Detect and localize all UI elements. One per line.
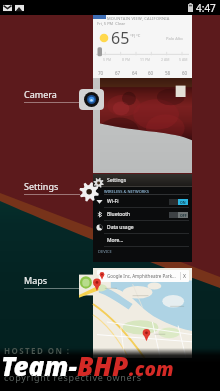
staticText: 5 AM — [179, 57, 188, 62]
staticText: .com — [129, 356, 174, 382]
button[interactable]: Settings — [93, 174, 192, 262]
staticText: Settings — [107, 177, 127, 184]
staticText: More... — [107, 237, 124, 244]
staticText: DEVICE — [98, 249, 112, 254]
staticText: HOSTED ON : — [4, 345, 71, 356]
staticText: copyright respective owners — [4, 371, 142, 383]
button[interactable]: Google Inc, Amphitheatre Park... — [97, 270, 189, 282]
staticText: Wi-Fi — [107, 198, 119, 205]
staticText: 5 PM — [103, 57, 112, 62]
staticText: Maps — [24, 274, 48, 286]
button[interactable]: More... — [93, 234, 192, 247]
staticText: 11 PM — [140, 57, 151, 62]
button[interactable]: Maps — [79, 272, 102, 298]
button[interactable]: Data usage — [93, 221, 192, 234]
staticText: Team- — [1, 348, 77, 383]
button[interactable]: Settings — [24, 180, 80, 195]
staticText: BHP — [77, 348, 129, 383]
button[interactable]: Wi-Fi — [93, 195, 192, 208]
staticText: MOUNTAIN VIEW, CALIFORNIA — [107, 16, 170, 21]
button[interactable]: Camera — [24, 88, 80, 103]
staticText: 65 — [111, 27, 130, 49]
staticText: Fri, 5 PM Clear — [97, 21, 126, 26]
staticText: Google Inc, Amphitheatre Park... — [107, 273, 176, 279]
button[interactable] — [93, 78, 192, 173]
staticText: Camera — [24, 88, 57, 100]
button[interactable]: Settings — [77, 177, 104, 204]
staticText: ON — [180, 200, 186, 205]
staticText: Bluetooth — [107, 211, 131, 218]
staticText: 60 — [182, 70, 188, 76]
staticText: Settings — [24, 180, 59, 192]
staticText: 67 — [115, 70, 121, 76]
staticText: 4:47 — [196, 1, 216, 15]
staticText: Palo Alto — [166, 36, 183, 41]
staticText: OFF — [180, 213, 187, 218]
button[interactable]: Maps — [24, 274, 80, 289]
staticText: WIRELESS & NETWORKS — [104, 189, 149, 194]
staticText: Data usage — [107, 224, 134, 231]
staticText: 8 PM — [122, 57, 131, 62]
staticText: 70 — [98, 70, 104, 76]
button[interactable]: Google Inc, Amphitheatre Park... — [93, 268, 192, 358]
staticText: X — [183, 273, 186, 280]
staticText: 64 — [132, 70, 138, 76]
staticText: 2 AM — [161, 57, 170, 62]
button[interactable]: Camera — [79, 89, 104, 110]
button[interactable]: MOUNTAIN VIEW, CALIFORNIA — [93, 15, 192, 78]
button[interactable]: Bluetooth — [93, 208, 192, 221]
staticText: 60 — [148, 70, 154, 76]
staticText: °F|°C — [130, 33, 141, 38]
staticText: 58 — [165, 70, 171, 76]
